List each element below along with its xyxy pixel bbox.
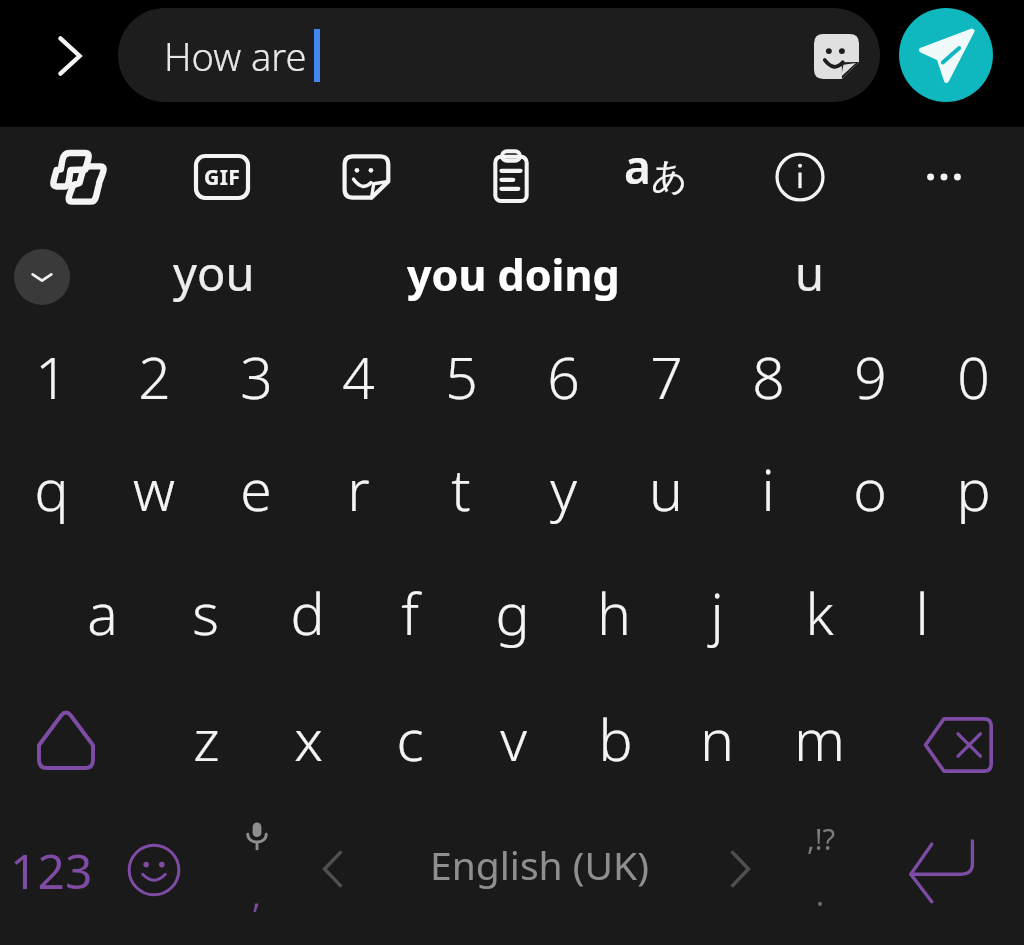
button[interactable]: Shift — [0, 683, 136, 795]
staticText: you doing — [407, 245, 620, 304]
button[interactable]: n — [666, 683, 768, 795]
button[interactable]: Stickers — [307, 125, 427, 229]
staticText: 9 — [854, 338, 887, 416]
staticText: 3 — [240, 338, 273, 416]
button[interactable]: 0 — [922, 321, 1024, 433]
button[interactable]: d — [256, 557, 358, 669]
button[interactable]: 1 — [0, 321, 102, 433]
button[interactable]: Stickers — [806, 26, 866, 86]
staticText: g — [495, 574, 530, 652]
button[interactable]: v — [462, 683, 564, 795]
staticText: m — [794, 700, 845, 778]
staticText: h — [597, 574, 631, 652]
button[interactable]: Collapse — [14, 249, 70, 305]
button[interactable]: Space — [309, 808, 769, 920]
button[interactable]: l — [871, 557, 973, 669]
button[interactable]: g — [461, 557, 563, 669]
button[interactable]: 5 — [410, 321, 512, 433]
staticText: o — [853, 450, 887, 528]
button[interactable]: Info — [740, 125, 860, 229]
button[interactable]: Next language — [710, 829, 770, 909]
staticText: i — [761, 450, 775, 528]
button[interactable]: 4 — [307, 321, 409, 433]
button[interactable]: Enter — [873, 815, 1013, 927]
button[interactable]: Clipboard — [451, 125, 571, 229]
button[interactable]: Emoji — [99, 814, 209, 926]
button[interactable]: 6 — [512, 321, 614, 433]
button[interactable]: i — [717, 433, 819, 545]
button[interactable]: p — [922, 433, 1024, 545]
button[interactable]: r — [307, 433, 409, 545]
button[interactable]: w — [103, 433, 205, 545]
staticText: a — [87, 574, 118, 652]
staticText: r — [347, 450, 370, 528]
button[interactable]: s — [154, 557, 256, 669]
staticText: e — [240, 450, 272, 528]
button[interactable]: u — [615, 433, 717, 545]
button[interactable]: 8 — [717, 321, 819, 433]
button[interactable]: you doing — [353, 229, 673, 319]
button[interactable]: How are — [118, 8, 880, 102]
staticText: z — [193, 700, 220, 778]
button[interactable]: b — [564, 683, 666, 795]
staticText: . — [816, 874, 825, 914]
button[interactable]: AR emoji — [18, 125, 138, 229]
button[interactable]: f — [359, 557, 461, 669]
staticText: 1 — [35, 338, 68, 416]
staticText: a — [624, 135, 651, 198]
staticText: q — [34, 450, 69, 528]
staticText: ,!? — [807, 819, 836, 855]
button[interactable]: c — [359, 683, 461, 795]
staticText: GIF — [204, 163, 241, 192]
staticText: 8 — [752, 338, 785, 416]
staticText: , — [252, 872, 262, 912]
button[interactable]: y — [512, 433, 614, 545]
staticText: d — [290, 574, 325, 652]
button[interactable]: t — [410, 433, 512, 545]
button[interactable]: a — [51, 557, 153, 669]
staticText: w — [133, 450, 175, 528]
button[interactable]: More options — [884, 125, 1004, 229]
button[interactable]: 2 — [103, 321, 205, 433]
button[interactable]: 9 — [819, 321, 921, 433]
staticText: u — [649, 450, 683, 528]
button[interactable]: 7 — [615, 321, 717, 433]
button[interactable]: h — [563, 557, 665, 669]
button[interactable]: e — [205, 433, 307, 545]
button[interactable]: Previous language — [303, 829, 363, 909]
button[interactable]: Language — [596, 125, 716, 229]
staticText: 2 — [138, 338, 171, 416]
button[interactable]: q — [0, 433, 102, 545]
button[interactable]: z — [155, 683, 257, 795]
button[interactable]: 3 — [205, 321, 307, 433]
staticText: 7 — [650, 338, 683, 416]
button[interactable]: m — [768, 683, 870, 795]
staticText: あ — [651, 153, 688, 198]
staticText: s — [192, 574, 219, 652]
button[interactable]: Punctuation — [768, 814, 870, 926]
staticText: you — [173, 241, 255, 305]
button[interactable]: Backspace — [888, 689, 1024, 801]
button[interactable]: u — [700, 228, 920, 318]
staticText: k — [805, 574, 834, 652]
staticText: 4 — [342, 338, 375, 416]
staticText: l — [915, 574, 929, 652]
staticText: How are — [164, 30, 307, 82]
staticText: n — [700, 700, 734, 778]
button[interactable]: 123 — [0, 814, 111, 926]
button[interactable]: j — [666, 557, 768, 669]
button[interactable]: x — [257, 683, 359, 795]
staticText: p — [956, 450, 991, 528]
button[interactable]: Voice input — [206, 814, 308, 926]
button[interactable]: you — [104, 228, 324, 318]
staticText: v — [500, 700, 527, 778]
button[interactable]: Expand toolbar — [32, 18, 108, 94]
staticText: u — [795, 241, 825, 305]
button[interactable]: o — [819, 433, 921, 545]
staticText: j — [710, 574, 724, 652]
staticText: English (UK) — [430, 838, 649, 891]
button[interactable]: Send — [899, 8, 993, 102]
button[interactable]: GIF — [162, 125, 282, 229]
button[interactable]: k — [768, 557, 870, 669]
staticText: y — [550, 450, 577, 528]
